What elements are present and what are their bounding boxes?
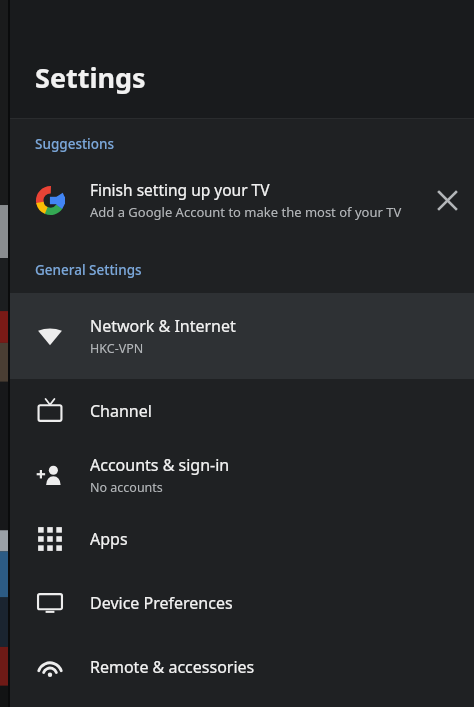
staticText: Remote & accessories bbox=[90, 656, 255, 678]
button[interactable]: Remote & accessories bbox=[10, 635, 474, 699]
staticText: Apps bbox=[90, 528, 128, 550]
button[interactable]: Device Preferences bbox=[10, 571, 474, 635]
staticText: Add a Google Account to make the most of… bbox=[90, 203, 402, 221]
button[interactable]: Finish setting up your TV bbox=[10, 153, 474, 247]
staticText: Network & Internet bbox=[90, 315, 236, 337]
staticText: Channel bbox=[90, 400, 152, 422]
button[interactable]: Dismiss suggestion bbox=[420, 173, 474, 227]
staticText: Device Preferences bbox=[90, 592, 233, 614]
staticText: Settings bbox=[35, 59, 146, 96]
button[interactable]: Apps bbox=[10, 507, 474, 571]
staticText: No accounts bbox=[90, 479, 163, 496]
button[interactable]: Channel bbox=[10, 379, 474, 443]
staticText: Finish setting up your TV bbox=[90, 179, 270, 200]
staticText: Accounts & sign-in bbox=[90, 454, 230, 476]
button[interactable]: Network & Internet bbox=[10, 293, 474, 379]
button[interactable]: Accounts & sign-in bbox=[10, 443, 474, 507]
staticText: Suggestions bbox=[35, 135, 115, 153]
staticText: General Settings bbox=[35, 261, 142, 279]
staticText: HKC-VPN bbox=[90, 340, 144, 357]
